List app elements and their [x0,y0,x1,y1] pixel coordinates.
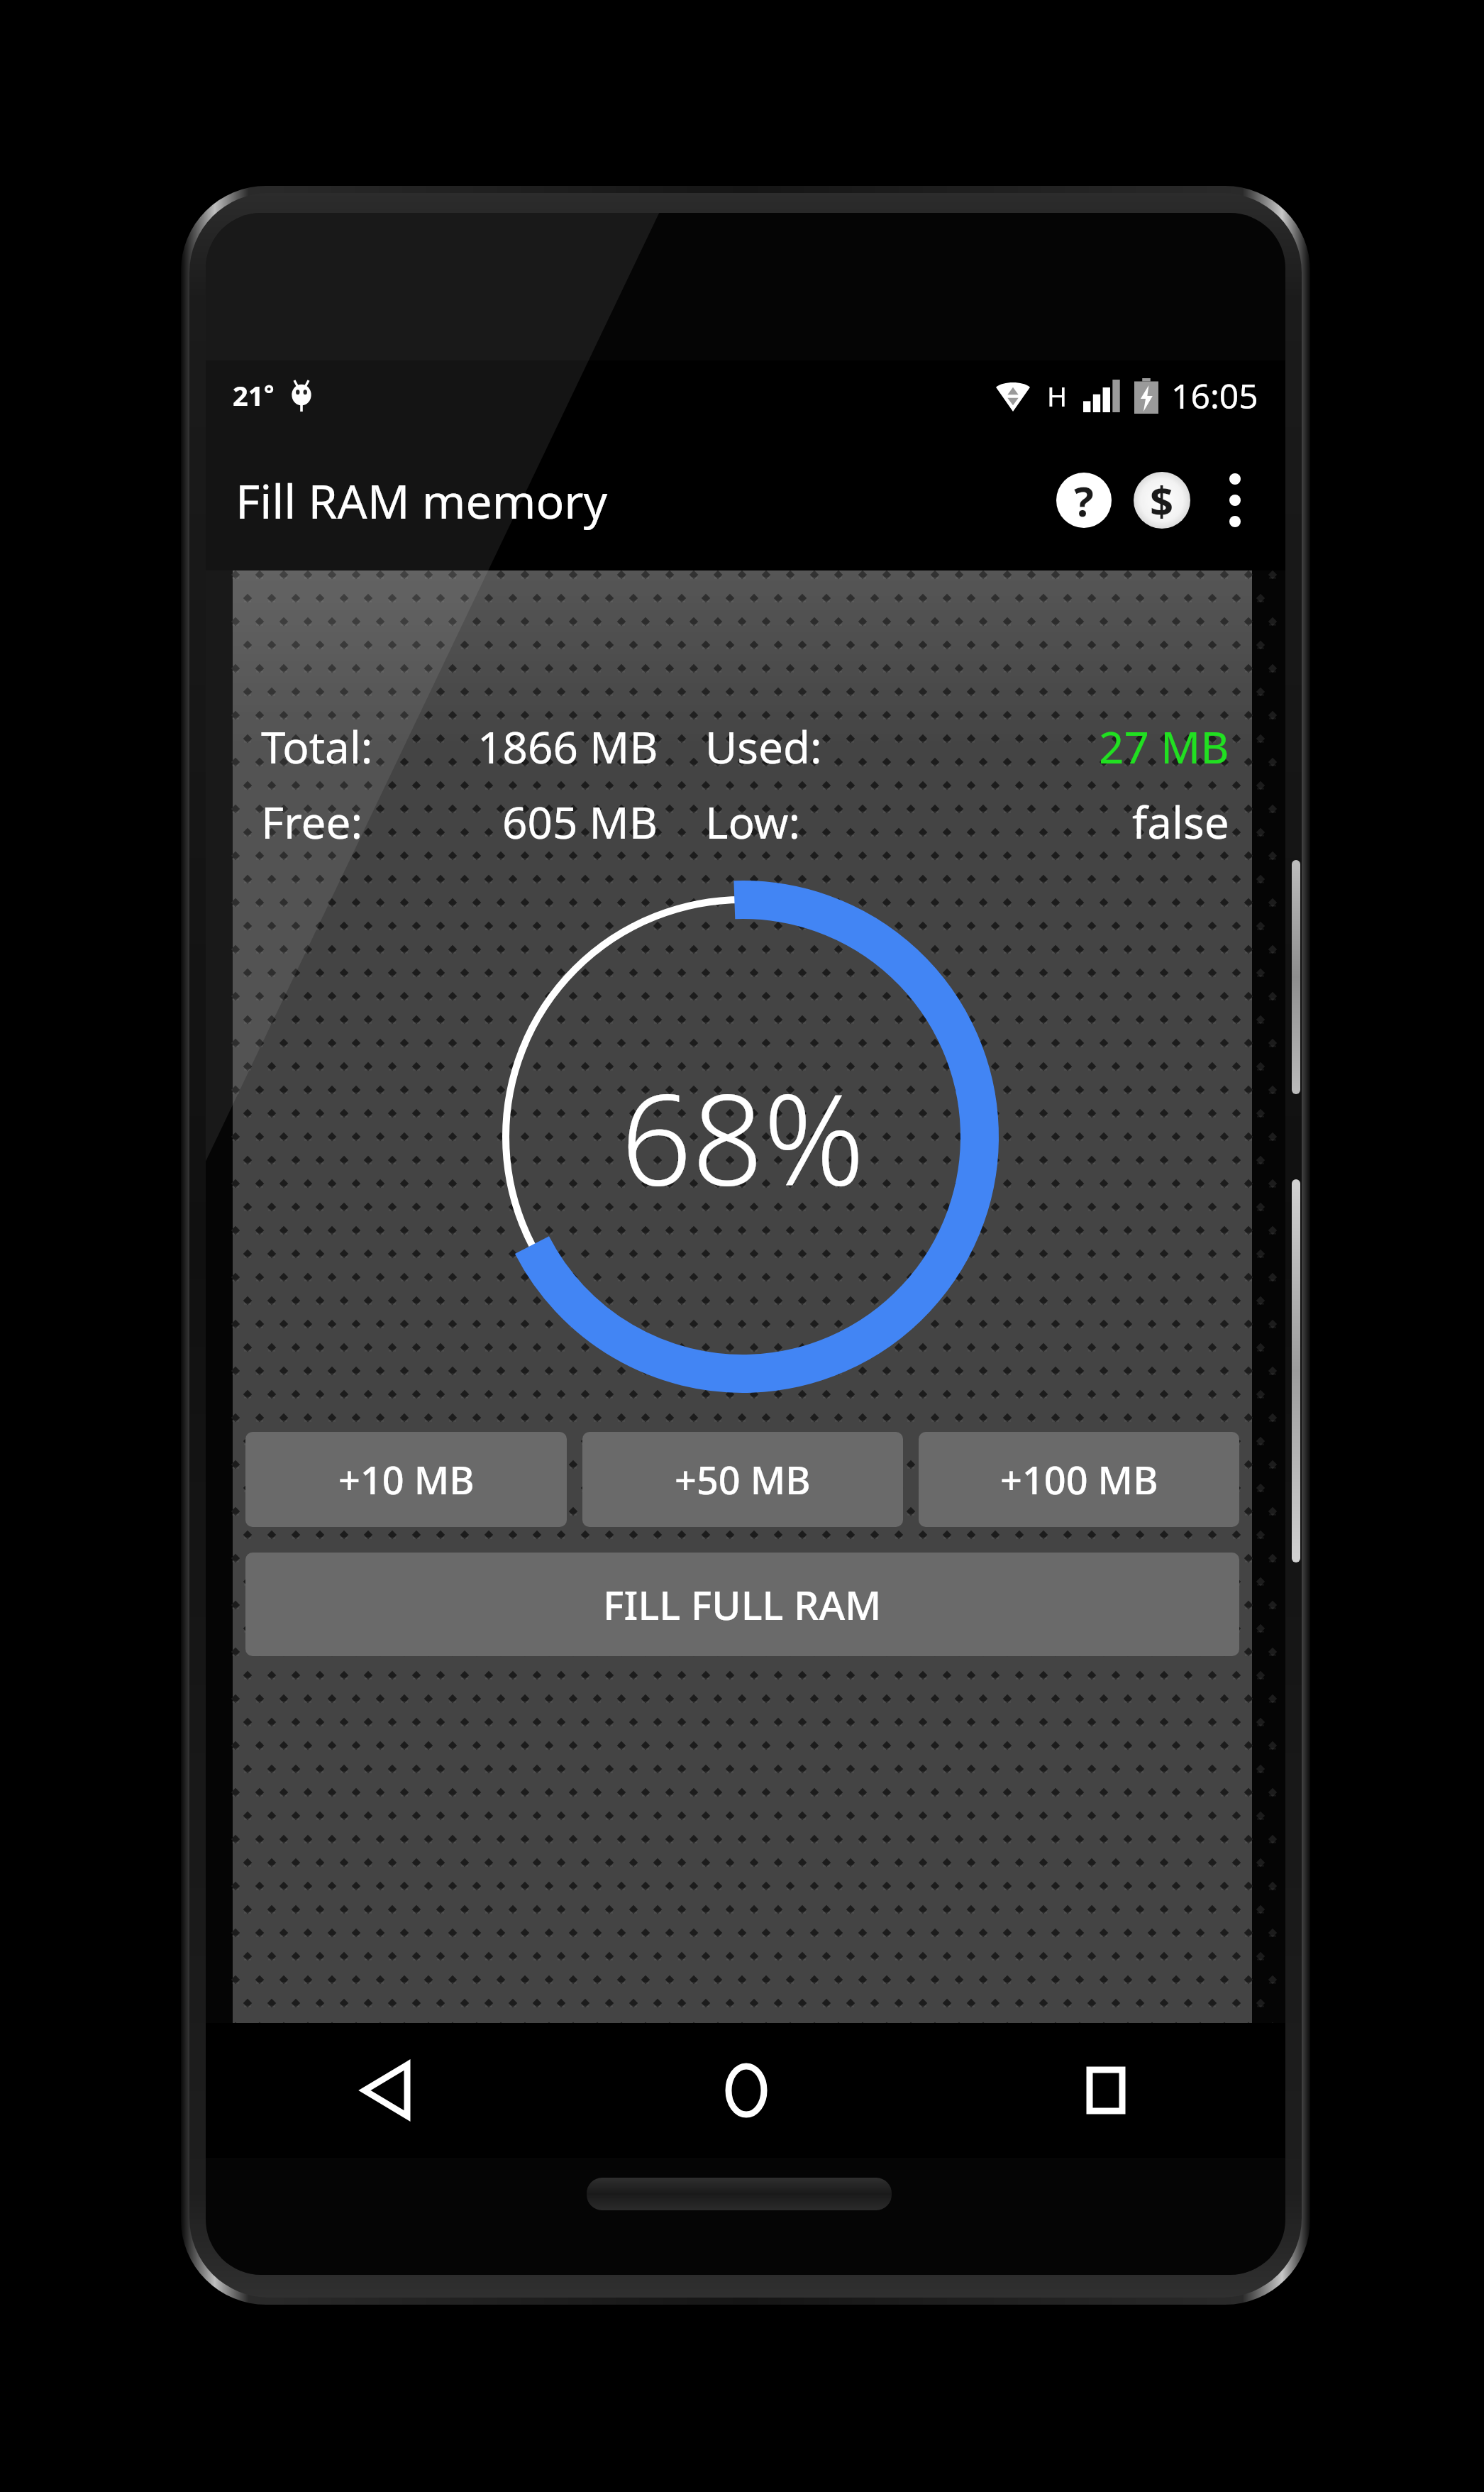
button[interactable]: +10 MB [245,1432,567,1527]
staticText: $ [1150,473,1174,529]
staticText: +10 MB [338,1453,475,1506]
staticText: +50 MB [675,1453,811,1506]
staticText: ° [264,377,275,409]
staticText: 68% [621,1052,865,1222]
staticText: 16:05 [1171,373,1258,419]
staticText: false [1132,792,1229,851]
staticText: Free: [261,792,363,851]
staticText: Low: [705,792,801,851]
staticText: H [1047,377,1068,414]
button[interactable]: FILL FULL RAM [245,1553,1239,1656]
button[interactable]: Help [1050,466,1118,534]
staticText: FILL FULL RAM [603,1577,882,1631]
button[interactable]: More options [1205,466,1266,534]
staticText: Total: [261,717,373,776]
staticText: Fill RAM memory [236,468,608,532]
staticText: Used: [705,717,822,776]
button[interactable]: +50 MB [582,1432,903,1527]
button[interactable]: +100 MB [919,1432,1239,1527]
button[interactable]: Back [206,2023,566,2158]
staticText: 605 MB [502,792,658,851]
staticText: 27 MB [1099,717,1229,776]
staticText: ? [1074,473,1094,528]
staticText: 1866 MB [477,717,658,776]
button[interactable]: Remove ads [1128,466,1196,534]
staticText: +100 MB [1000,1453,1158,1506]
staticText: 21 [233,377,264,414]
button[interactable]: Home [566,2023,926,2158]
button[interactable]: Recent apps [926,2023,1285,2158]
